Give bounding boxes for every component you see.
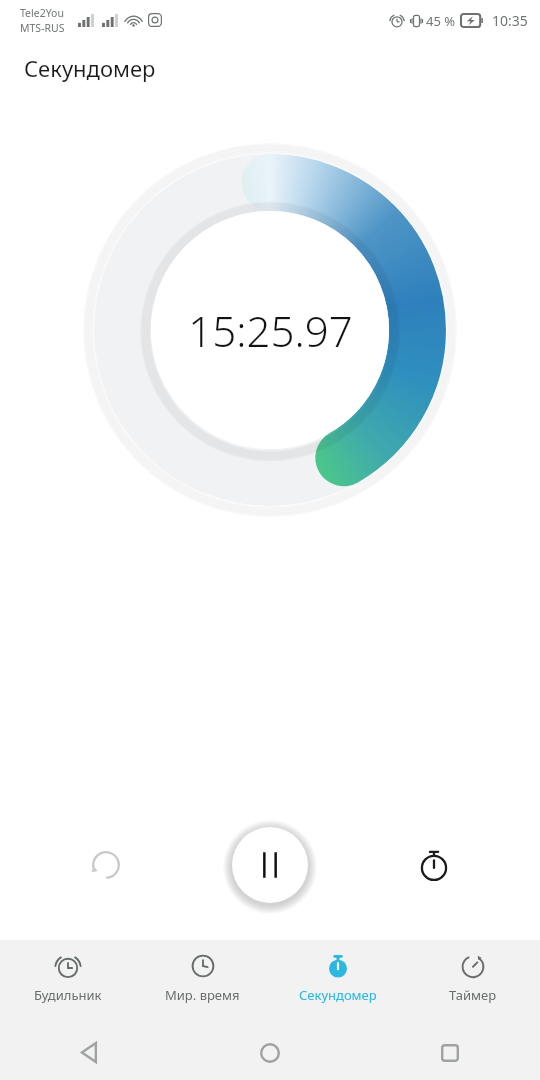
button[interactable]: Недавние приложения — [360, 1025, 540, 1080]
staticText: Мир. время — [165, 986, 240, 1004]
staticText: 45 % — [426, 12, 456, 30]
staticText: Секундомер — [299, 986, 377, 1004]
button[interactable]: Будильник — [0, 940, 135, 1004]
staticText: 15:25.97 — [188, 302, 353, 359]
staticText: 10:35 — [492, 11, 528, 30]
staticText: MTS-RUS — [20, 21, 65, 35]
button[interactable]: Секундомер — [270, 940, 405, 1004]
staticText: Таймер — [449, 986, 497, 1004]
button[interactable]: Сбросить — [78, 837, 134, 893]
button[interactable]: Назад — [0, 1025, 180, 1080]
button[interactable]: Круг — [406, 837, 462, 893]
staticText: Будильник — [34, 986, 102, 1004]
button[interactable]: Пауза — [232, 827, 308, 903]
button[interactable]: Таймер — [405, 940, 540, 1004]
button[interactable]: Главный экран — [180, 1025, 360, 1080]
staticText: Tele2You — [20, 6, 64, 20]
button[interactable]: Мир. время — [135, 940, 270, 1004]
staticText: Секундомер — [24, 53, 156, 83]
